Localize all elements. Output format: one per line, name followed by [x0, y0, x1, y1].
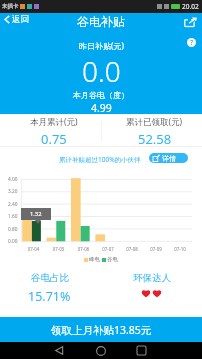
staticText: 0.80: [8, 226, 18, 233]
staticText: 0.75: [41, 130, 67, 147]
button[interactable]: Share: [179, 16, 202, 28]
button[interactable]: 谷电占比: [0, 272, 101, 304]
staticText: 52.58: [138, 130, 172, 147]
button[interactable]: 返回: [0, 12, 35, 27]
button[interactable]: Back: [49, 342, 69, 359]
staticText: 2.40: [8, 201, 18, 208]
staticText: 0.0: [82, 52, 121, 90]
staticText: 07-09: [144, 246, 168, 252]
staticText: 07-07: [96, 246, 120, 252]
staticText: 累计补贴超过100%的小伙伴: [59, 155, 141, 164]
staticText: 07-08: [120, 246, 144, 252]
staticText: 谷电: [107, 256, 118, 263]
button[interactable]: 领取上月补贴13.85元: [0, 317, 202, 342]
staticText: 返回: [12, 14, 29, 25]
staticText: 20.02: [182, 2, 199, 11]
staticText: 累计已领取(元): [126, 116, 183, 128]
button[interactable]: Recents: [131, 342, 151, 359]
staticText: 详情: [162, 154, 176, 163]
staticText: 1.32: [30, 210, 42, 218]
staticText: 07-10: [168, 246, 192, 252]
staticText: 峰电: [89, 256, 100, 263]
staticText: 4.99: [91, 101, 112, 115]
button[interactable]: 环保达人: [101, 272, 202, 304]
staticText: 3.20: [8, 188, 18, 195]
button[interactable]: Help: [187, 38, 196, 47]
staticText: 1.60: [8, 213, 18, 220]
staticText: 环保达人: [133, 272, 171, 284]
staticText: 07-06: [71, 246, 96, 252]
staticText: 07-05: [46, 246, 71, 252]
staticText: ?: [190, 38, 194, 47]
staticText: 未插卡: [2, 3, 19, 10]
staticText: 07-04: [21, 246, 46, 252]
button[interactable]: 本月累计(元): [0, 114, 101, 147]
staticText: 本月谷电（度）: [73, 90, 129, 100]
staticText: 谷电占比: [31, 272, 69, 284]
staticText: 昨日补贴(元): [79, 40, 124, 51]
staticText: 领取上月补贴13.85元: [51, 323, 152, 337]
staticText: 4.00: [8, 176, 18, 183]
button[interactable]: 累计已领取(元): [101, 114, 202, 147]
staticText: 0.00: [8, 238, 18, 245]
button[interactable]: Home: [91, 342, 111, 359]
staticText: 15.71%: [28, 288, 71, 304]
staticText: 本月累计(元): [30, 116, 78, 128]
staticText: 谷电补贴: [77, 14, 125, 29]
button[interactable]: 详情: [149, 153, 188, 163]
